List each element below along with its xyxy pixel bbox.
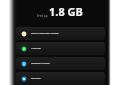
staticText: WhatsApp: [31, 47, 41, 50]
button[interactable]: Messages: [16, 72, 105, 85]
button[interactable]: Download Manager: [16, 57, 105, 70]
staticText: 1.8 GB: [49, 4, 83, 18]
staticText: Messages: [31, 77, 41, 80]
staticText: Free up: [37, 14, 48, 18]
staticText: Download Manager: [31, 62, 50, 65]
staticText: Nearby Information Provider: [31, 32, 59, 35]
button[interactable]: Nearby Information Provider: [16, 27, 105, 40]
button[interactable]: WhatsApp: [16, 42, 105, 55]
